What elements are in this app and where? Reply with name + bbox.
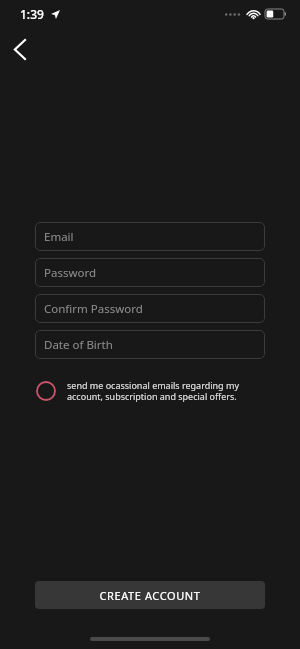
button[interactable]: Confirm Password [35,294,265,323]
staticText: 1:39 [20,6,44,22]
staticText: Date of Birth [44,337,113,353]
button[interactable]: Password [35,258,265,287]
staticText: send me ocassional emails regarding my a… [67,379,240,403]
staticText: Confirm Password [44,301,143,317]
button[interactable]: send me ocassional emails regarding my a… [35,379,265,403]
staticText: CREATE ACCOUNT [99,588,201,603]
staticText: Password [44,265,97,281]
button[interactable]: Email [35,222,265,251]
button[interactable]: Date of Birth [35,330,265,359]
button[interactable]: Back [2,32,36,66]
staticText: Email [44,229,74,245]
button[interactable]: CREATE ACCOUNT [35,581,265,609]
